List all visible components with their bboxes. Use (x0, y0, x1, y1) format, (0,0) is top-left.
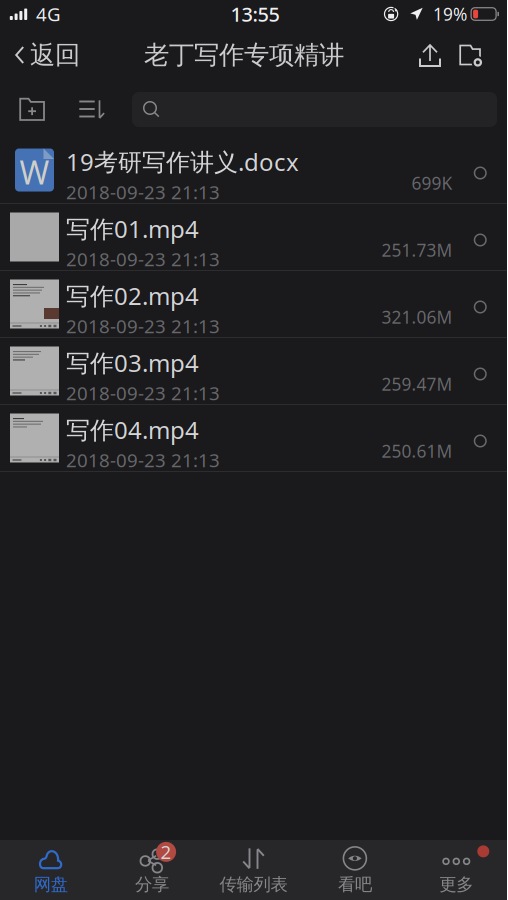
staticText: 19% (433, 2, 467, 25)
button[interactable]: 看吧 (304, 840, 406, 900)
button[interactable]: 返回 (0, 28, 90, 82)
staticText: 写作02.mp4 (66, 280, 199, 312)
staticText: 19考研写作讲义.docx (66, 146, 299, 178)
staticText: 更多 (439, 874, 473, 895)
button[interactable]: Upload (410, 28, 450, 82)
button[interactable]: 写作02.mp4 (0, 271, 507, 338)
staticText: 写作01.mp4 (66, 213, 199, 245)
staticText: 321.06M (381, 305, 452, 328)
staticText: 2018-09-23 21:13 (66, 447, 220, 472)
staticText: 250.61M (381, 439, 452, 462)
button[interactable]: 写作04.mp4 (0, 405, 507, 472)
button[interactable]: 写作01.mp4 (0, 204, 507, 271)
staticText: 网盘 (34, 874, 68, 895)
button[interactable]: New folder (0, 82, 64, 137)
button[interactable]: 写作03.mp4 (0, 338, 507, 405)
staticText: 2018-09-23 21:13 (66, 246, 220, 271)
staticText: 写作04.mp4 (66, 414, 199, 446)
staticText: 写作03.mp4 (66, 347, 199, 379)
staticText: 2 (161, 839, 172, 864)
staticText: W (19, 151, 49, 193)
staticText: 传输列表 (219, 874, 287, 895)
staticText: 返回 (30, 39, 80, 70)
staticText: 699K (411, 171, 452, 194)
staticText: 看吧 (338, 874, 372, 895)
staticText: 259.47M (381, 372, 452, 395)
staticText: 4G (36, 2, 61, 26)
button[interactable]: 网盘 (0, 840, 101, 900)
button[interactable]: Sort (64, 82, 120, 137)
staticText: 13:55 (231, 1, 280, 27)
button[interactable]: Folder settings (450, 28, 490, 82)
staticText: 2018-09-23 21:13 (66, 313, 220, 338)
staticText: 251.73M (381, 238, 452, 261)
staticText: 2018-09-23 21:13 (66, 179, 220, 204)
button[interactable]: 2 (101, 840, 203, 900)
staticText: 老丁写作专项精讲 (144, 39, 344, 70)
staticText: 2018-09-23 21:13 (66, 380, 220, 405)
button[interactable]: 传输列表 (203, 840, 304, 900)
button[interactable]: W (0, 137, 507, 204)
button[interactable]: 更多 (406, 840, 507, 900)
button[interactable] (132, 92, 497, 127)
staticText: 分享 (135, 874, 169, 895)
